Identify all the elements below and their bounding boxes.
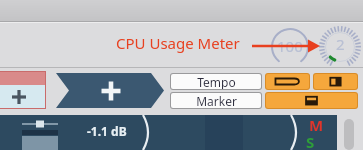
other: Load meter <box>267 26 313 66</box>
button[interactable]: Toggle <box>265 73 310 90</box>
button[interactable]: Scrollbar <box>344 119 354 150</box>
button[interactable]: Marker <box>170 92 262 109</box>
other: Annotation arrow pointing to CPU meter <box>252 38 320 54</box>
other: Add track <box>10 88 28 106</box>
staticText: M <box>309 115 324 133</box>
staticText: 2 <box>336 34 345 54</box>
button[interactable] <box>0 85 45 108</box>
staticText: 100 <box>277 36 303 56</box>
staticText: S <box>306 132 315 150</box>
button[interactable]: Toggle <box>313 73 358 90</box>
staticText: Tempo <box>197 74 236 89</box>
button[interactable]: Add <box>56 73 164 108</box>
other: CPU usage meter <box>318 24 362 68</box>
staticText: CPU Usage Meter <box>116 33 240 53</box>
staticText: Marker <box>196 93 237 108</box>
other: Fader <box>20 118 60 150</box>
button[interactable]: Toggle <box>265 92 358 109</box>
button[interactable]: Tempo <box>170 73 262 90</box>
staticText: -1.1 dB <box>87 123 127 139</box>
